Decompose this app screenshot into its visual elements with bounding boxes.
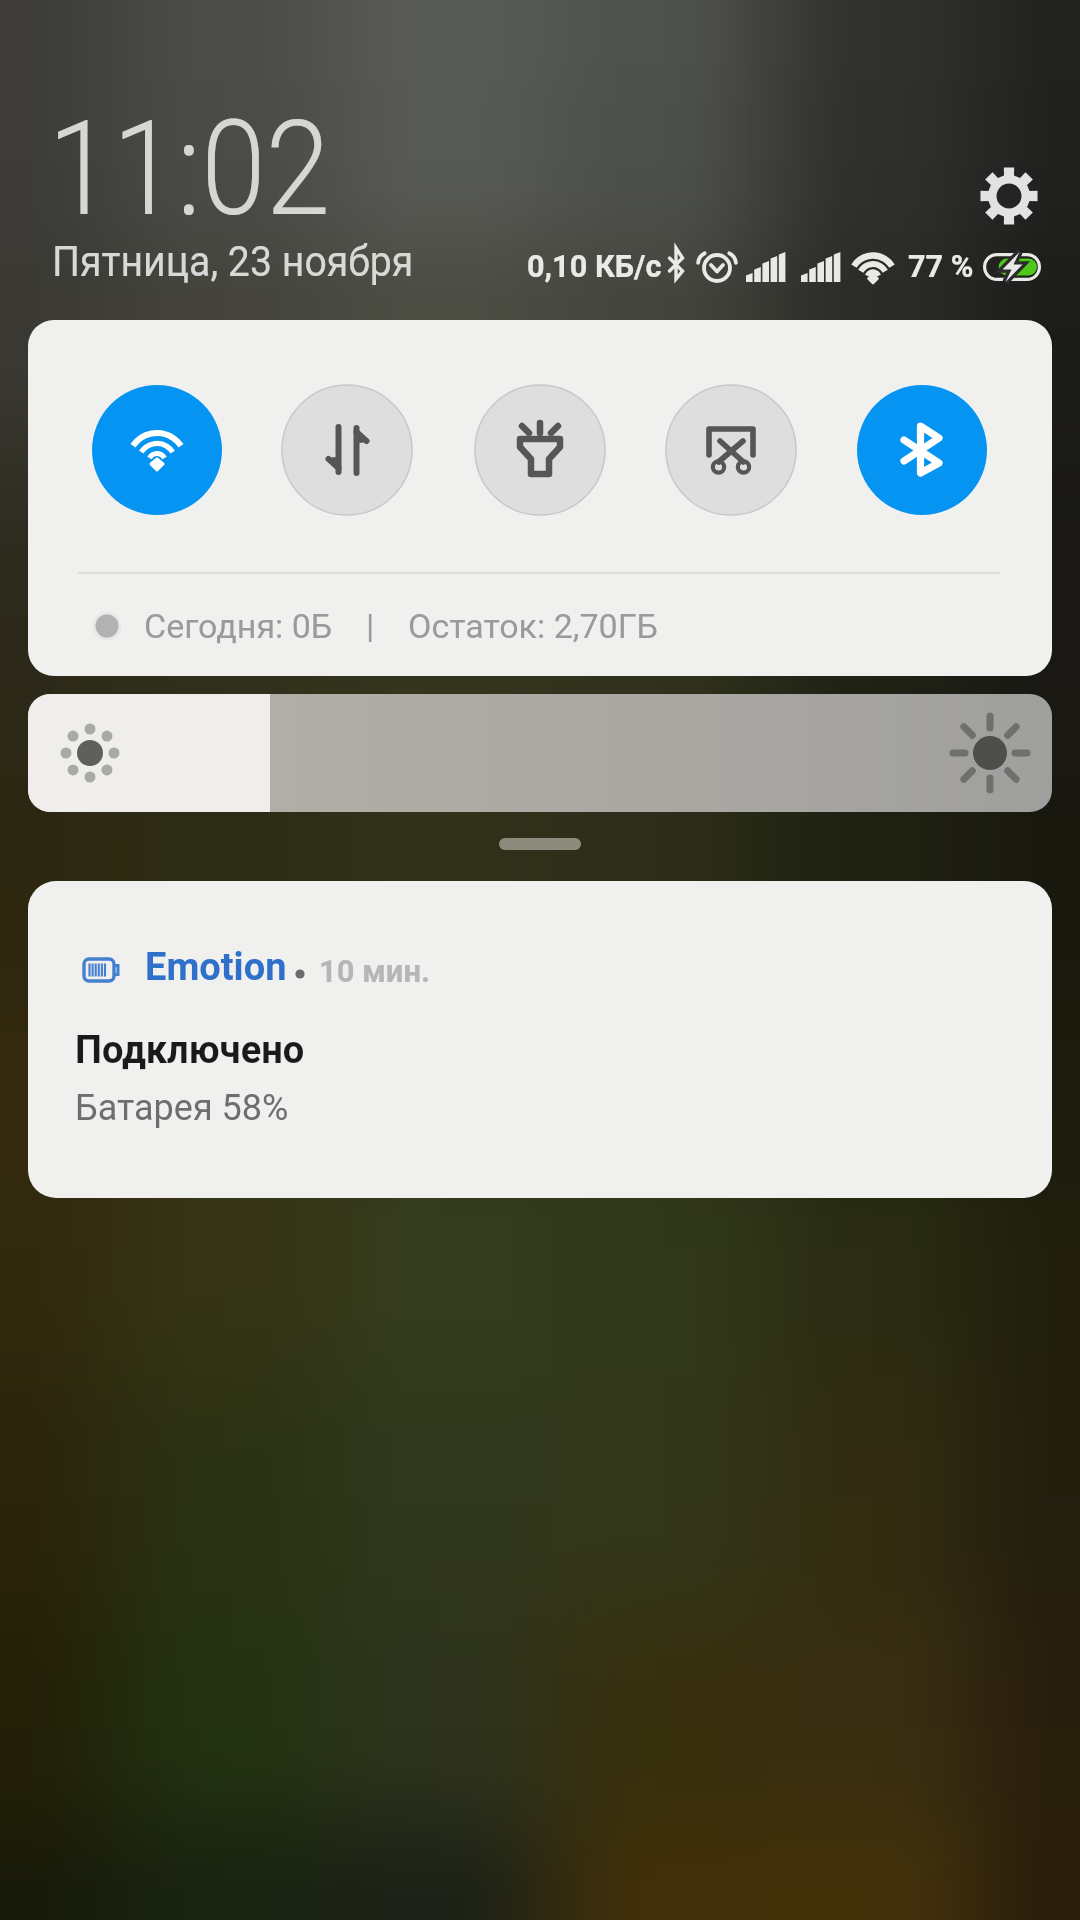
staticText: Подключено: [75, 1028, 305, 1073]
staticText: Emotion: [145, 945, 287, 990]
staticText: Батарея 58%: [75, 1087, 289, 1129]
staticText: Сегодня: 0Б | Остаток: 2,70ГБ: [144, 606, 659, 646]
button[interactable]: Brightness: [28, 694, 1052, 812]
staticText: 77 %: [908, 248, 974, 284]
staticText: 10 мин.: [319, 953, 431, 989]
button[interactable]: Settings: [965, 152, 1053, 240]
staticText: 11:02: [48, 92, 330, 247]
button[interactable]: Emotion: [28, 881, 1052, 1198]
staticText: 0,10 КБ/с: [527, 248, 662, 284]
button[interactable]: Expand: [499, 838, 581, 850]
staticText: Пятница, 23 ноября: [52, 237, 414, 286]
